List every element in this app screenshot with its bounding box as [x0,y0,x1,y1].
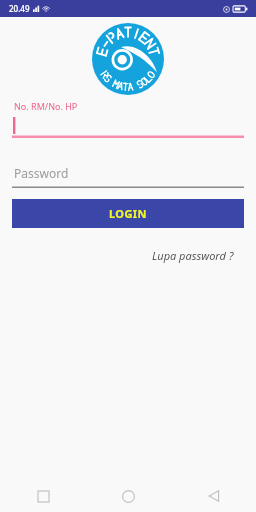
staticText: 20.49 [9,3,30,14]
button[interactable]: Home [86,480,171,512]
staticText: Password [14,165,69,181]
staticText: LOGIN [109,206,147,221]
button[interactable]: LOGIN [12,199,244,228]
button[interactable]: Lupa password ? [142,244,244,267]
button[interactable]: Back [171,480,256,512]
staticText: Lupa password ? [152,248,234,263]
button[interactable]: Password [12,158,244,188]
button[interactable]: Recent apps [0,480,86,512]
staticText: No. RM/No. HP [14,100,78,112]
button[interactable] [12,117,244,138]
